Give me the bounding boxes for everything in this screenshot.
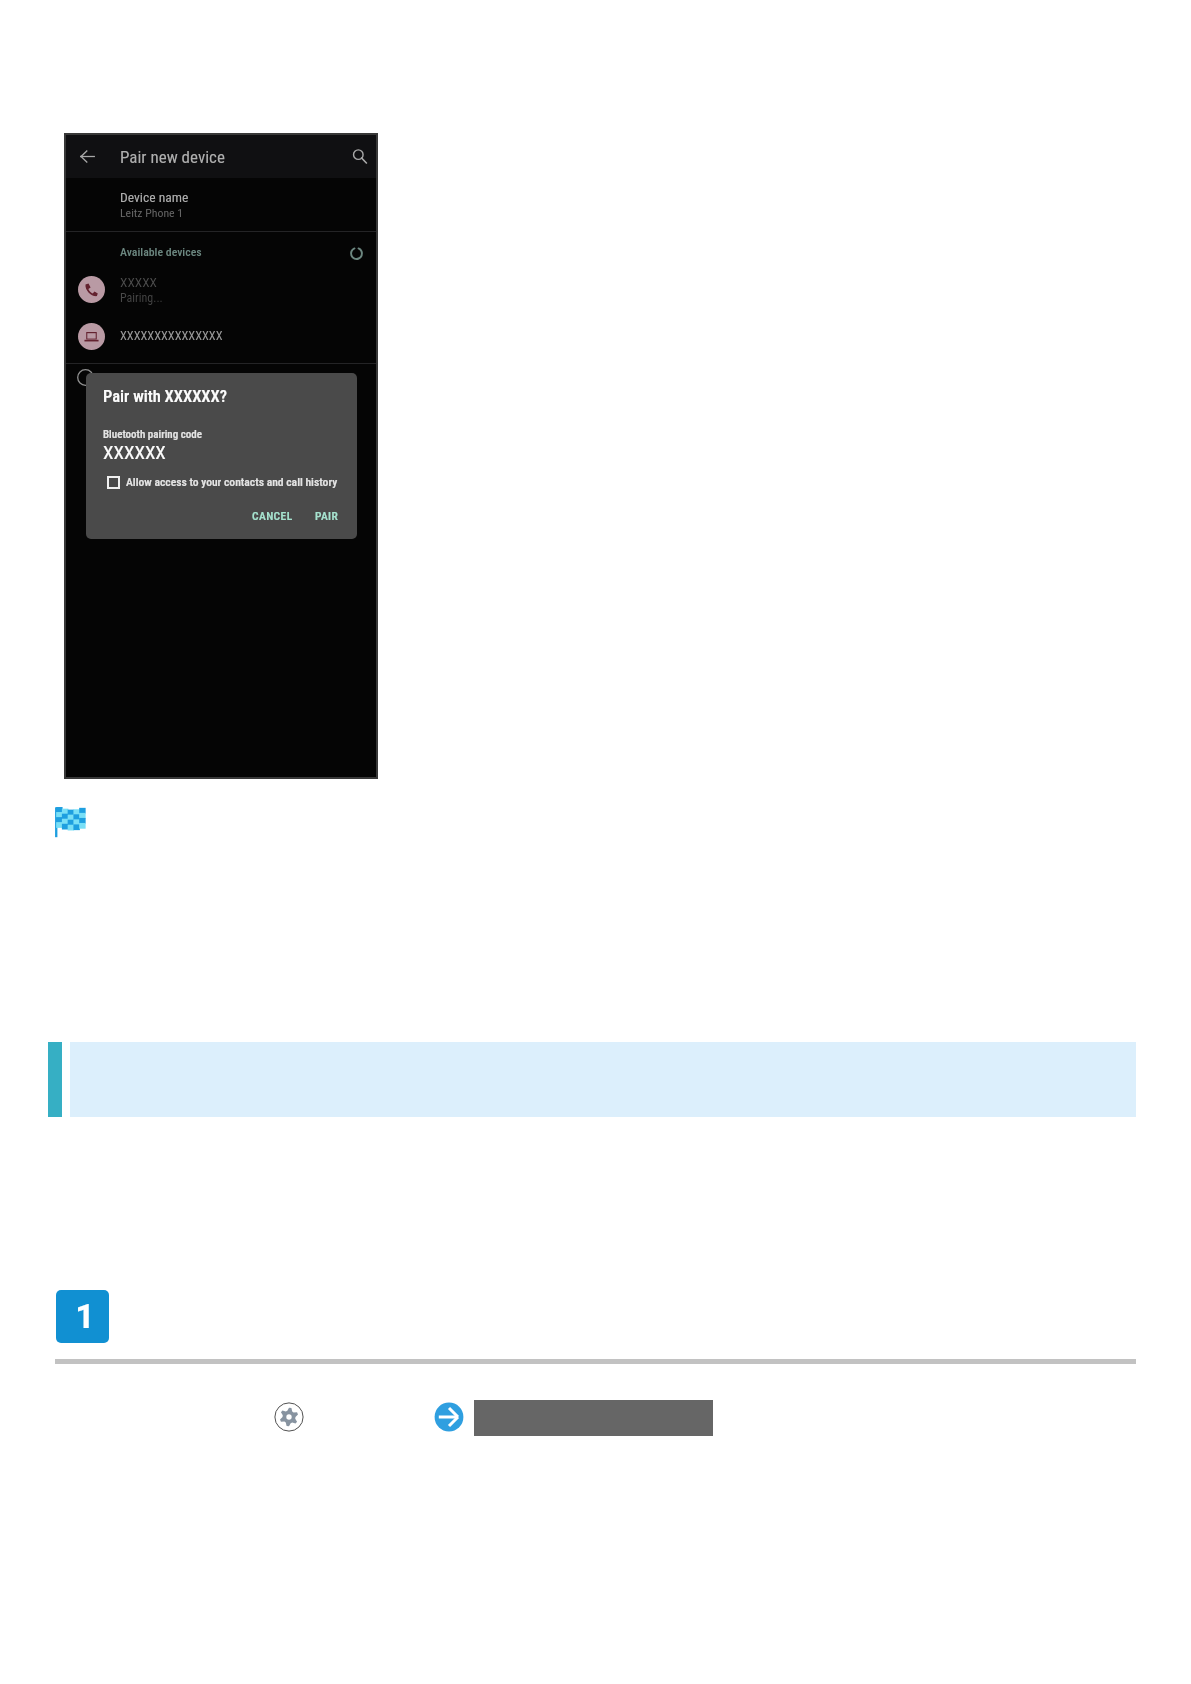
- staticText: Available devices: [120, 245, 202, 259]
- button[interactable]: Search: [340, 135, 378, 178]
- staticText: XXXXXX: [103, 441, 166, 463]
- staticText: PAIR: [315, 509, 339, 522]
- staticText: XXXXX: [120, 275, 157, 291]
- button[interactable]: Next step: [434, 1402, 464, 1432]
- button[interactable]: XXXXXXXXXXXXXXX: [66, 315, 376, 363]
- button[interactable]: XXXXX: [66, 268, 376, 315]
- button[interactable]: Navigate back: [66, 135, 108, 178]
- staticText: Device name: [120, 189, 189, 205]
- button[interactable]: Settings: [274, 1402, 304, 1432]
- staticText: CANCEL: [252, 509, 293, 522]
- staticText: Allow access to your contacts and call h…: [126, 475, 338, 489]
- staticText: Bluetooth pairing code: [103, 428, 203, 441]
- staticText: Leitz Phone 1: [120, 206, 184, 220]
- staticText: XXXXXXXXXXXXXXX: [120, 328, 223, 343]
- staticText: 1: [75, 1296, 95, 1336]
- staticText: Pairing...: [120, 291, 163, 305]
- button[interactable]: Allow access to your contacts and call h…: [107, 475, 338, 489]
- button[interactable]: Device name: [66, 178, 376, 231]
- button[interactable]: CANCEL: [248, 506, 297, 525]
- button[interactable]: PAIR: [311, 506, 343, 525]
- staticText: Pair new device: [120, 147, 225, 167]
- staticText: Pair with XXXXXX?: [103, 387, 227, 406]
